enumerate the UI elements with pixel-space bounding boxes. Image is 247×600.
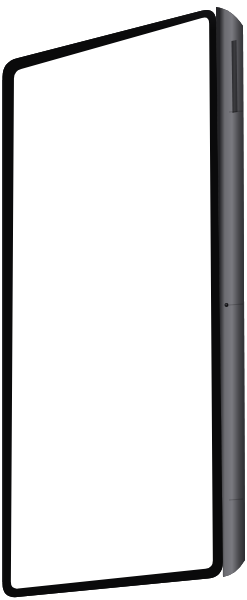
button[interactable]: Tablet device with blank screen bbox=[0, 0, 247, 600]
